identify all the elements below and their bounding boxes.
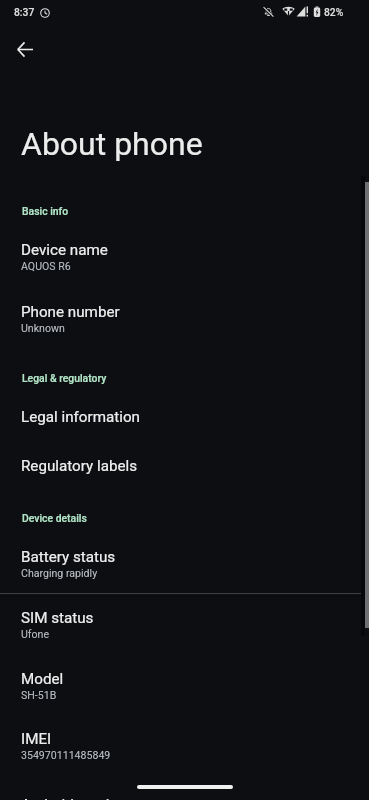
button[interactable]: Battery status — [0, 542, 369, 590]
staticText: IMEI — [21, 730, 52, 748]
button[interactable]: IMEI — [0, 724, 369, 772]
button[interactable]: Phone number — [0, 297, 369, 345]
staticText: Phone number — [21, 303, 120, 321]
button[interactable]: Legal information — [0, 402, 369, 446]
button[interactable]: Android version — [0, 790, 369, 800]
staticText: Device name — [21, 241, 108, 259]
staticText: About phone — [21, 125, 203, 163]
staticText: Basic info — [22, 205, 69, 217]
button[interactable]: Back — [5, 29, 45, 69]
button[interactable]: Regulatory labels — [0, 451, 369, 495]
staticText: Legal information — [21, 408, 140, 426]
staticText: 354970111485849 — [21, 749, 111, 761]
staticText: Battery status — [21, 548, 116, 566]
staticText: Charging rapidly — [21, 567, 98, 579]
staticText: Device details — [22, 512, 87, 524]
button[interactable]: SIM status — [0, 603, 369, 651]
staticText: Legal & regulatory — [22, 372, 107, 384]
staticText: 8:37 — [14, 6, 35, 18]
button[interactable]: Model — [0, 664, 369, 712]
staticText: SIM status — [21, 609, 94, 627]
staticText: SH-51B — [21, 689, 57, 701]
staticText: Ufone — [21, 628, 50, 640]
staticText: AQUOS R6 — [21, 260, 71, 272]
staticText: Regulatory labels — [21, 457, 138, 475]
button[interactable]: Device name — [0, 235, 369, 283]
staticText: Model — [21, 670, 64, 688]
staticText: Android version — [21, 796, 127, 800]
staticText: 82% — [324, 6, 344, 18]
staticText: Unknown — [21, 322, 65, 334]
